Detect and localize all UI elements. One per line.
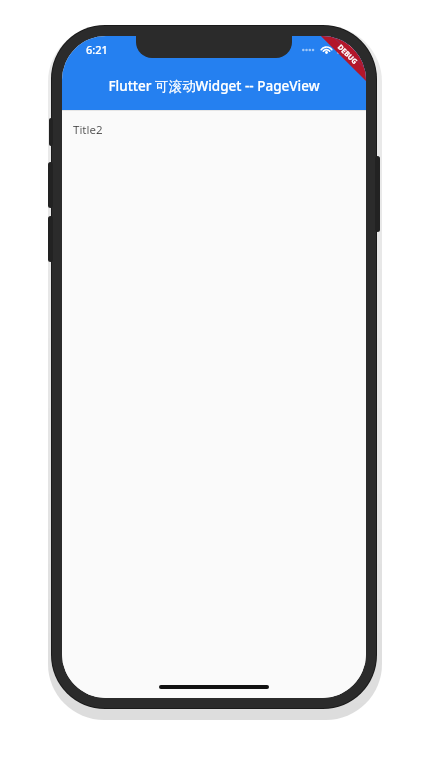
staticText: Title2: [73, 122, 103, 138]
other: Battery: [337, 45, 354, 54]
other: Wi-Fi: [320, 44, 333, 54]
button[interactable]: Title2: [62, 111, 366, 149]
staticText: DEBUG: [335, 43, 360, 67]
staticText: Flutter 可滚动Widget -- PageView: [108, 77, 320, 95]
staticText: 6:21: [86, 42, 108, 57]
